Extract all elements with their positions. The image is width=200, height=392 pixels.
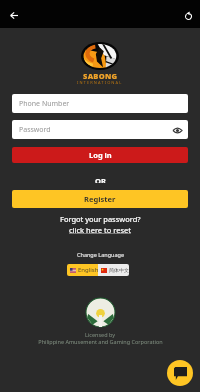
button[interactable]: English xyxy=(67,264,98,276)
staticText: English xyxy=(78,266,98,274)
staticText: Register xyxy=(84,194,116,204)
staticText: INTERNATIONAL xyxy=(77,80,123,85)
staticText: Forgot your password? xyxy=(60,214,141,224)
button[interactable]: Show password xyxy=(172,125,182,135)
button[interactable]: click here to reset xyxy=(69,225,131,235)
button[interactable]: Chat support xyxy=(167,360,193,386)
staticText: Phone Number xyxy=(19,99,70,109)
staticText: OR xyxy=(95,176,106,183)
staticText: Change Language xyxy=(77,251,124,258)
staticText: Licensed by xyxy=(85,331,116,338)
staticText: Log in xyxy=(89,150,112,160)
button[interactable]: Password xyxy=(12,120,188,139)
staticText: Philippine Amusement and Gaming Corporat… xyxy=(38,338,163,345)
button[interactable]: Back xyxy=(3,4,25,26)
button[interactable]: Log in xyxy=(12,147,188,163)
button[interactable]: Register xyxy=(12,190,188,208)
staticText: SABONG xyxy=(83,71,118,81)
staticText: Password xyxy=(19,125,51,135)
button[interactable]: Phone Number xyxy=(12,94,188,113)
staticText: click here to reset xyxy=(69,225,131,235)
button[interactable]: Refresh xyxy=(177,5,199,27)
staticText: 简体中文 xyxy=(109,267,129,273)
button[interactable]: 简体中文 xyxy=(98,264,129,276)
